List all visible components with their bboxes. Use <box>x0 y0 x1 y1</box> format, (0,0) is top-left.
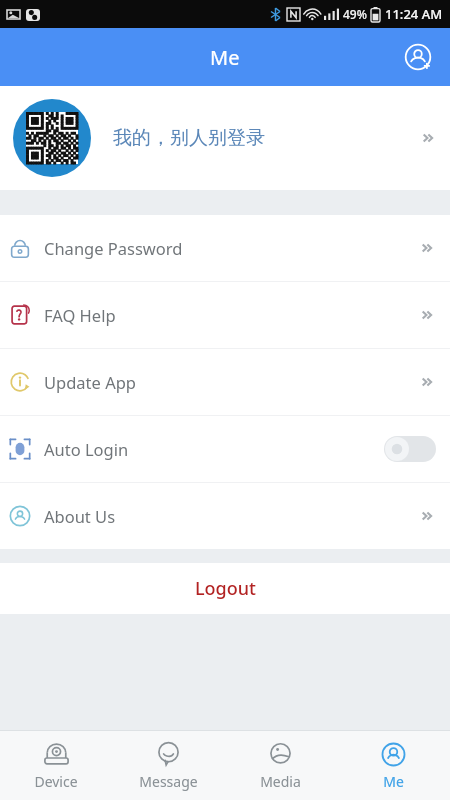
staticText: Media <box>260 772 301 791</box>
staticText: Device <box>34 772 78 791</box>
staticText: 我的，别人别登录 <box>113 126 265 150</box>
staticText: FAQ Help <box>44 304 116 326</box>
button[interactable]: Media <box>224 731 337 800</box>
button[interactable]: Auto Login <box>0 416 450 482</box>
button[interactable]: Device <box>0 731 112 800</box>
staticText: Change Password <box>44 237 183 259</box>
staticText: Logout <box>195 576 256 601</box>
staticText: Update App <box>44 371 137 393</box>
staticText: 49% <box>343 6 367 22</box>
button[interactable]: Logout <box>0 563 450 614</box>
staticText: Me <box>383 772 404 791</box>
button[interactable]: Add account <box>396 35 440 79</box>
staticText: Auto Login <box>44 438 129 460</box>
button[interactable]: FAQ Help <box>0 282 450 348</box>
button[interactable]: Message <box>112 731 224 800</box>
button[interactable]: Auto Login toggle <box>384 436 436 462</box>
button[interactable]: Change Password <box>0 215 450 281</box>
button[interactable]: About Us <box>0 483 450 549</box>
button[interactable]: Me <box>337 731 450 800</box>
button[interactable]: Update App <box>0 349 450 415</box>
staticText: Message <box>139 772 198 791</box>
staticText: Me <box>210 44 240 71</box>
button[interactable]: 我的，别人别登录 <box>0 86 450 190</box>
staticText: About Us <box>44 505 116 527</box>
staticText: 11:24 AM <box>385 5 443 23</box>
